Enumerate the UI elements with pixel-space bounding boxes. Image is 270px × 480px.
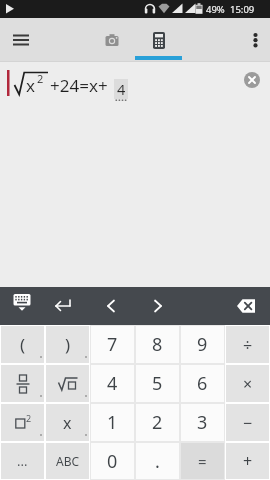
staticText: 2 bbox=[37, 71, 44, 86]
button[interactable]: 2 bbox=[136, 404, 179, 441]
staticText: ) bbox=[65, 333, 71, 356]
button[interactable]: × bbox=[226, 365, 269, 402]
button[interactable] bbox=[93, 287, 129, 325]
staticText: . bbox=[155, 449, 160, 474]
staticText: ... bbox=[17, 452, 28, 470]
button[interactable]: ( bbox=[1, 326, 44, 363]
button[interactable] bbox=[0, 18, 44, 62]
button[interactable]: ) bbox=[46, 326, 89, 363]
staticText: 2 bbox=[26, 412, 32, 424]
staticText: 49% bbox=[206, 3, 225, 16]
staticText: x bbox=[26, 74, 35, 97]
button[interactable] bbox=[45, 287, 81, 325]
button[interactable]: 5 bbox=[136, 365, 179, 402]
staticText: = bbox=[198, 451, 207, 471]
staticText: 7 bbox=[107, 332, 118, 357]
button[interactable] bbox=[135, 18, 182, 62]
button[interactable]: + bbox=[226, 443, 269, 479]
button[interactable]: − bbox=[226, 404, 269, 441]
button[interactable]: 6 bbox=[181, 365, 224, 402]
staticText: 1 bbox=[107, 410, 118, 435]
button[interactable]: ... bbox=[1, 443, 44, 479]
staticText: ÷ bbox=[243, 334, 253, 356]
button[interactable]: x bbox=[46, 404, 89, 441]
button[interactable]: 2 bbox=[1, 404, 44, 441]
button[interactable]: 7 bbox=[91, 326, 134, 363]
button[interactable] bbox=[140, 287, 176, 325]
staticText: x bbox=[63, 412, 72, 434]
staticText: ABC bbox=[56, 453, 80, 469]
button[interactable]: ABC bbox=[46, 443, 89, 479]
button[interactable]: ÷ bbox=[226, 326, 269, 363]
button[interactable]: . bbox=[136, 443, 179, 479]
button[interactable]: 9 bbox=[181, 326, 224, 363]
staticText: + bbox=[243, 450, 253, 472]
staticText: +24=x+ bbox=[50, 74, 108, 97]
button[interactable] bbox=[46, 365, 89, 402]
button[interactable]: = bbox=[181, 443, 224, 479]
staticText: 15:09 bbox=[230, 3, 255, 16]
staticText: ( bbox=[20, 333, 26, 356]
button[interactable]: 0 bbox=[91, 443, 134, 479]
staticText: 2 bbox=[152, 410, 163, 435]
button[interactable]: 8 bbox=[136, 326, 179, 363]
staticText: 4 bbox=[107, 371, 118, 396]
button[interactable] bbox=[1, 365, 44, 402]
button[interactable] bbox=[228, 287, 268, 325]
button[interactable] bbox=[0, 287, 44, 325]
button[interactable]: 1 bbox=[91, 404, 134, 441]
staticText: 9 bbox=[197, 332, 208, 357]
button[interactable]: 3 bbox=[181, 404, 224, 441]
staticText: 3 bbox=[197, 410, 208, 435]
staticText: × bbox=[243, 373, 253, 395]
button[interactable] bbox=[88, 18, 135, 62]
staticText: 8 bbox=[152, 332, 163, 357]
button[interactable] bbox=[244, 72, 260, 88]
button[interactable]: 4 bbox=[91, 365, 134, 402]
staticText: 6 bbox=[197, 371, 208, 396]
staticText: 0 bbox=[107, 449, 118, 474]
button[interactable] bbox=[236, 18, 270, 62]
staticText: 4 bbox=[117, 79, 126, 99]
staticText: 5 bbox=[152, 371, 163, 396]
staticText: − bbox=[243, 412, 253, 434]
